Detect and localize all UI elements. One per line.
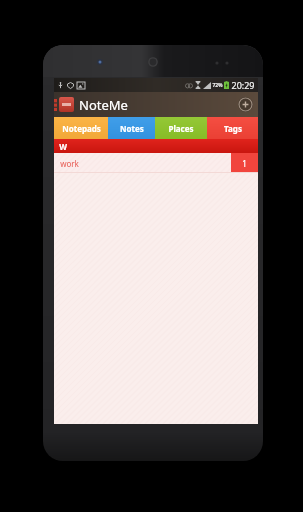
- staticText: 1: [242, 158, 247, 169]
- staticText: Places: [168, 123, 194, 134]
- staticText: W: [59, 141, 67, 152]
- button[interactable]: Notes: [108, 117, 155, 139]
- staticText: Tags: [224, 123, 242, 134]
- staticText: Notepads: [62, 123, 101, 134]
- button[interactable]: Notepads: [54, 117, 108, 139]
- staticText: Notes: [120, 123, 144, 134]
- staticText: 72%: [212, 82, 223, 89]
- button[interactable]: App icon: [59, 97, 74, 112]
- staticText: work: [60, 158, 79, 169]
- button[interactable]: W: [54, 139, 258, 153]
- button[interactable]: work: [54, 153, 258, 173]
- staticText: 20:29: [231, 79, 255, 91]
- button[interactable]: Add: [238, 97, 253, 112]
- button[interactable]: Places: [155, 117, 207, 139]
- button[interactable]: Tags: [207, 117, 258, 139]
- staticText: NoteMe: [79, 96, 128, 114]
